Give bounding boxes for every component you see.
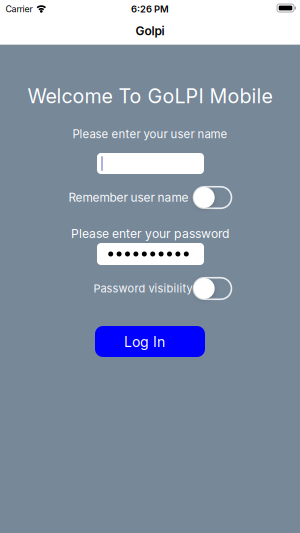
staticText: Remember user name	[68, 190, 188, 205]
staticText: Please enter your user name	[72, 127, 227, 141]
button[interactable]: Password visibility	[193, 278, 231, 299]
button[interactable]: Password	[97, 243, 204, 265]
staticText: Golpi	[135, 24, 164, 38]
button[interactable]: Log In	[95, 326, 205, 357]
staticText: Welcome To GoLPI Mobile	[27, 84, 272, 108]
staticText: 6:26 PM	[131, 3, 169, 15]
button[interactable]: Remember user name	[193, 187, 231, 208]
staticText: Password visibility	[93, 282, 192, 295]
staticText: Please enter your password	[71, 226, 229, 241]
staticText: Log In	[124, 333, 165, 350]
staticText: Carrier	[5, 4, 32, 14]
button[interactable]: User name	[97, 153, 204, 174]
